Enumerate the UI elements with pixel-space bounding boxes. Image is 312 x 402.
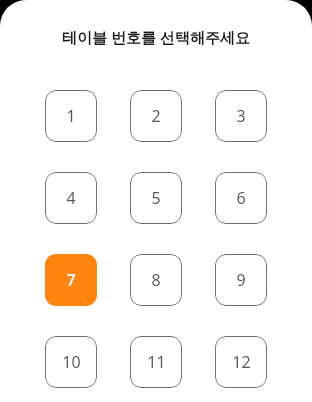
staticText: 4 [66, 187, 76, 209]
button[interactable]: 4 [45, 172, 97, 224]
button[interactable]: 5 [130, 172, 182, 224]
staticText: 3 [236, 105, 246, 127]
button[interactable]: 6 [215, 172, 267, 224]
button[interactable]: 11 [130, 336, 182, 388]
button[interactable]: 12 [215, 336, 267, 388]
staticText: 1 [66, 105, 76, 127]
button[interactable]: 7 [45, 254, 97, 306]
staticText: 8 [151, 269, 161, 291]
staticText: 2 [151, 105, 161, 127]
staticText: 7 [66, 269, 76, 291]
button[interactable]: 10 [45, 336, 97, 388]
staticText: 9 [236, 269, 246, 291]
button[interactable]: 2 [130, 90, 182, 142]
staticText: 10 [62, 351, 81, 373]
button[interactable]: 8 [130, 254, 182, 306]
staticText: 5 [151, 187, 161, 209]
button[interactable]: 3 [215, 90, 267, 142]
button[interactable]: 9 [215, 254, 267, 306]
staticText: 12 [232, 351, 251, 373]
button[interactable]: 1 [45, 90, 97, 142]
staticText: 11 [147, 351, 166, 373]
staticText: 6 [236, 187, 246, 209]
staticText: 테이블 번호를 선택해주세요 [62, 27, 250, 47]
